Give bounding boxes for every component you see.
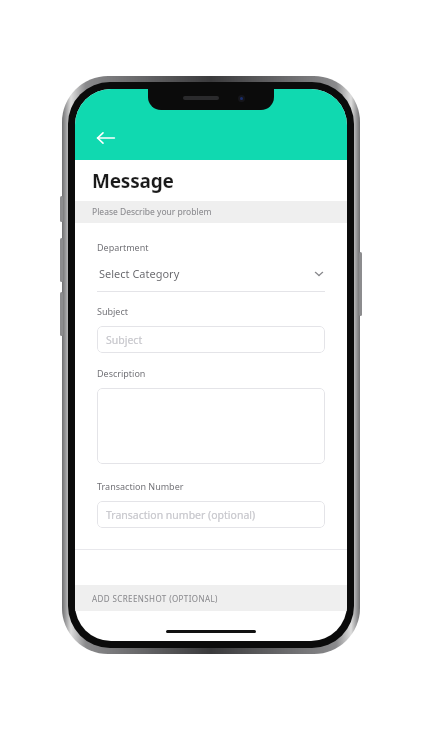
button[interactable]: Subject	[97, 326, 325, 353]
staticText: Subject	[106, 333, 143, 347]
button[interactable]: Select Category	[97, 264, 325, 292]
staticText: Transaction number (optional)	[106, 508, 256, 522]
staticText: Message	[92, 168, 174, 194]
staticText: Transaction Number	[97, 480, 184, 492]
button[interactable]: ADD SCREENSHOT (OPTIONAL)	[75, 585, 347, 611]
button[interactable]: Back	[91, 123, 121, 153]
staticText: Description	[97, 367, 146, 379]
button[interactable]	[97, 388, 325, 464]
staticText: Subject	[97, 305, 129, 317]
staticText: Department	[97, 241, 149, 253]
staticText: ADD SCREENSHOT (OPTIONAL)	[92, 593, 218, 604]
button[interactable]: Transaction number (optional)	[97, 501, 325, 528]
staticText: Please Describe your problem	[92, 206, 212, 218]
staticText: Select Category	[99, 266, 180, 281]
